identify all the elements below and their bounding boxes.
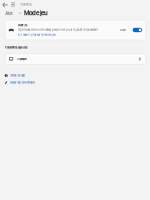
staticText: Paramètres <box>19 3 31 6</box>
staticText: Optimisez votre ordinateur personnel pou… <box>18 28 98 31</box>
staticText: Jeux <box>5 10 13 16</box>
staticText: ? <box>6 74 7 77</box>
button[interactable]: Envoyer des commentaires <box>5 80 75 85</box>
staticText: Paramètres associés <box>5 46 27 49</box>
button[interactable]: Graphiques <box>5 53 146 64</box>
button[interactable]: ? <box>5 73 75 78</box>
button[interactable]: Menu <box>9 1 17 8</box>
staticText: Mode jeu <box>18 24 27 27</box>
button[interactable]: Jeux <box>5 10 13 16</box>
staticText: Activé <box>120 28 126 32</box>
staticText: Mode jeu <box>24 9 48 17</box>
staticText: Obtenir de l'aide <box>9 74 24 77</box>
staticText: En savoir plus sur le mode jeu <box>18 33 55 36</box>
staticText: > <box>19 11 21 15</box>
staticText: Graphiques <box>17 57 27 61</box>
staticText: Envoyer des commentaires <box>9 81 34 84</box>
button[interactable]: Retour <box>1 1 9 8</box>
button[interactable]: Mode jeu <box>5 20 146 40</box>
